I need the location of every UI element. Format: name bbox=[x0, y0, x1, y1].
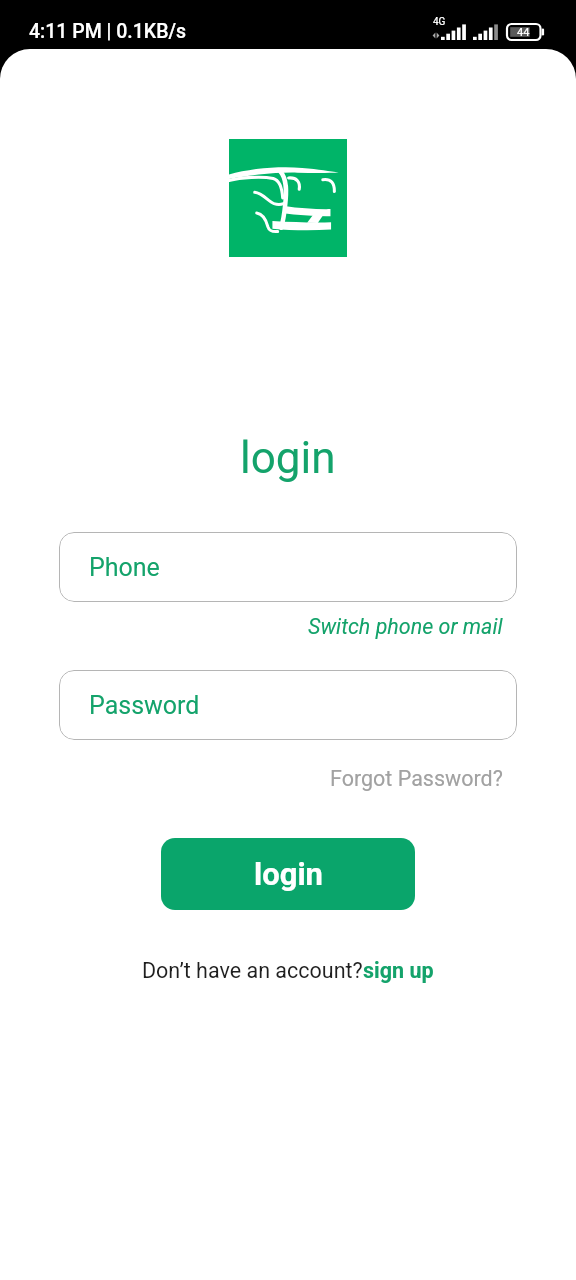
staticText: Don’t have an account? bbox=[142, 958, 363, 983]
staticText: login bbox=[240, 432, 336, 484]
staticText: 4G bbox=[433, 16, 446, 28]
button[interactable]: sign up bbox=[363, 958, 434, 983]
button[interactable]: Password bbox=[59, 670, 517, 740]
staticText: login bbox=[254, 856, 323, 892]
other: Battery 44 percent bbox=[507, 24, 544, 40]
button[interactable]: Switch phone or mail bbox=[308, 614, 503, 639]
staticText: sign up bbox=[363, 958, 434, 983]
button[interactable]: Forgot Password? bbox=[330, 766, 503, 791]
staticText: Forgot Password? bbox=[330, 766, 503, 791]
button[interactable]: login bbox=[161, 838, 415, 910]
staticText: Phone bbox=[89, 553, 160, 582]
staticText: 4:11 PM | 0.1KB/s bbox=[29, 20, 187, 43]
other: Second SIM signal bbox=[473, 22, 501, 40]
staticText: 44 bbox=[517, 26, 530, 39]
staticText: Password bbox=[89, 691, 200, 720]
other: App logo bbox=[229, 139, 347, 257]
other: Mobile signal bbox=[432, 22, 468, 40]
staticText: Switch phone or mail bbox=[308, 614, 503, 639]
button[interactable]: Phone bbox=[59, 532, 517, 602]
